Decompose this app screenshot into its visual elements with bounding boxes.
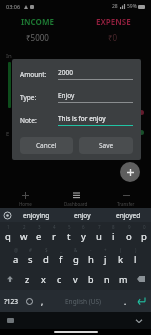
- button[interactable]: 6: [76, 222, 91, 245]
- staticText: s: [28, 253, 33, 266]
- button[interactable]: Emoji: [22, 290, 36, 312]
- button[interactable]: x: [35, 268, 51, 290]
- staticText: b: [88, 273, 94, 285]
- button[interactable]: -: [83, 245, 98, 268]
- staticText: l: [134, 253, 137, 266]
- button[interactable]: 8: [106, 222, 121, 245]
- button[interactable]: 4: [46, 222, 61, 245]
- button[interactable]: @: [8, 245, 23, 268]
- button[interactable]: 0: [136, 222, 151, 245]
- staticText: 59%: [127, 3, 137, 10]
- staticText: t: [67, 230, 71, 243]
- staticText: a: [13, 253, 19, 266]
- button[interactable]: z: [19, 268, 35, 290]
- button[interactable]: $: [38, 245, 53, 268]
- button[interactable]: enjoy: [59, 208, 105, 222]
- button[interactable]: Home: [0, 190, 51, 208]
- button[interactable]: .: [119, 290, 131, 312]
- button[interactable]: ,: [36, 290, 48, 312]
- staticText: ₹5000: [26, 32, 49, 43]
- button[interactable]: 7: [91, 222, 106, 245]
- button[interactable]: enjoying: [14, 208, 59, 222]
- staticText: ?123: [4, 297, 18, 306]
- staticText: 9: [128, 224, 131, 230]
- staticText: Enjoy: [58, 91, 75, 100]
- button[interactable]: _: [53, 245, 68, 268]
- staticText: f: [59, 253, 63, 266]
- button[interactable]: 3: [31, 222, 46, 245]
- staticText: p: [141, 230, 147, 243]
- staticText: EXPENSE: [96, 16, 131, 27]
- staticText: c: [57, 273, 62, 285]
- staticText: E: [6, 130, 10, 138]
- staticText: z: [25, 273, 30, 285]
- button[interactable]: m: [115, 268, 131, 290]
- button[interactable]: n: [99, 268, 115, 290]
- staticText: Note:: [20, 116, 58, 125]
- button[interactable]: Shift: [0, 268, 19, 290]
- button[interactable]: Save: [79, 137, 133, 154]
- staticText: This is for enjoy: [58, 114, 106, 123]
- staticText: (: [120, 247, 122, 253]
- staticText: k: [118, 253, 124, 266]
- staticText: r: [52, 230, 56, 243]
- staticText: 6: [82, 224, 85, 230]
- staticText: Type:: [20, 93, 58, 102]
- staticText: 4: [53, 224, 56, 230]
- staticText: 1: [7, 224, 10, 230]
- staticText: -: [90, 247, 92, 253]
- staticText: i: [112, 230, 115, 243]
- button[interactable]: Cancel: [20, 137, 73, 154]
- button[interactable]: Enter: [131, 290, 151, 312]
- button[interactable]: v: [67, 268, 83, 290]
- staticText: &: [74, 247, 78, 253]
- staticText: v: [73, 273, 78, 285]
- staticText: 28: [112, 3, 118, 10]
- staticText: y: [81, 230, 86, 243]
- button[interactable]: +: [98, 245, 113, 268]
- button[interactable]: Dashboard: [51, 190, 101, 208]
- button[interactable]: 2: [16, 222, 31, 245]
- staticText: enjoyed: [116, 211, 141, 220]
- button[interactable]: &: [68, 245, 83, 268]
- button[interactable]: English (US): [48, 290, 119, 312]
- staticText: 2000: [58, 68, 73, 77]
- staticText: h: [88, 253, 94, 266]
- staticText: 8: [112, 224, 115, 230]
- staticText: @: [14, 247, 19, 253]
- button[interactable]: b: [83, 268, 99, 290]
- staticText: enjoy: [74, 211, 91, 220]
- button[interactable]: Transfer: [101, 190, 151, 208]
- staticText: ): [135, 247, 137, 253]
- button[interactable]: Amount:: [20, 67, 133, 81]
- staticText: #: [29, 247, 32, 253]
- staticText: Dashboard: [64, 201, 88, 207]
- staticText: o: [126, 230, 132, 243]
- button[interactable]: (: [113, 245, 128, 268]
- button[interactable]: 1: [0, 222, 16, 245]
- staticText: Save: [99, 141, 114, 150]
- staticText: q: [5, 230, 11, 243]
- staticText: m: [119, 273, 128, 285]
- staticText: In: [6, 52, 12, 60]
- staticText: 03:06: [6, 3, 21, 10]
- staticText: 3: [38, 224, 41, 230]
- button[interactable]: Add transaction: [120, 162, 140, 182]
- button[interactable]: #: [23, 245, 38, 268]
- button[interactable]: 5: [61, 222, 76, 245]
- staticText: w: [20, 230, 28, 243]
- staticText: enjoying: [23, 211, 50, 220]
- button[interactable]: Type:: [20, 90, 133, 104]
- button[interactable]: ?123: [0, 290, 22, 312]
- button[interactable]: ): [128, 245, 143, 268]
- button[interactable]: enjoyed: [105, 208, 151, 222]
- button[interactable]: c: [51, 268, 67, 290]
- button[interactable]: Backspace: [131, 268, 151, 290]
- staticText: j: [104, 253, 107, 266]
- staticText: d: [43, 253, 49, 266]
- staticText: 5: [68, 224, 71, 230]
- button[interactable]: 9: [121, 222, 136, 245]
- staticText: English (US): [65, 297, 102, 306]
- staticText: 0: [143, 224, 146, 230]
- button[interactable]: Note:: [20, 113, 133, 127]
